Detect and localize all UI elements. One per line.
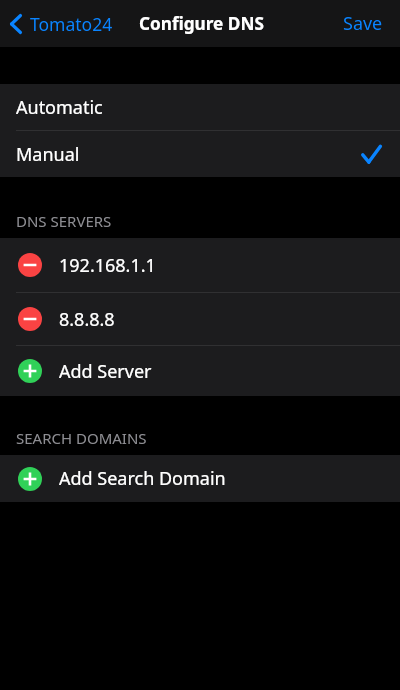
- button[interactable]: Add Search Domain: [0, 455, 400, 502]
- button[interactable]: Manual: [0, 131, 400, 177]
- button[interactable]: Back to Tomato24: [0, 12, 121, 36]
- staticText: Tomato24: [30, 12, 113, 36]
- staticText: 8.8.8.8: [59, 307, 115, 332]
- button[interactable]: Delete 8.8.8.8: [18, 307, 42, 331]
- other: Selected: [362, 145, 381, 164]
- staticText: Configure DNS: [139, 12, 264, 35]
- staticText: 192.168.1.1: [59, 253, 156, 278]
- button[interactable]: Save: [326, 0, 400, 47]
- button[interactable]: Automatic: [0, 84, 400, 130]
- button[interactable]: Add Search Domain: [18, 467, 42, 491]
- staticText: Add Search Domain: [59, 466, 226, 491]
- staticText: Automatic: [16, 95, 103, 120]
- button[interactable]: Delete 192.168.1.1: [18, 253, 42, 277]
- button[interactable]: Delete 192.168.1.1: [0, 238, 400, 292]
- staticText: SEARCH DOMAINS: [16, 428, 147, 448]
- staticText: Manual: [16, 142, 80, 167]
- button[interactable]: Add Server: [0, 346, 400, 396]
- staticText: Add Server: [59, 359, 152, 384]
- staticText: DNS SERVERS: [16, 211, 112, 231]
- staticText: Save: [343, 11, 383, 36]
- button[interactable]: Add Server: [18, 359, 42, 383]
- button[interactable]: Delete 8.8.8.8: [0, 293, 400, 345]
